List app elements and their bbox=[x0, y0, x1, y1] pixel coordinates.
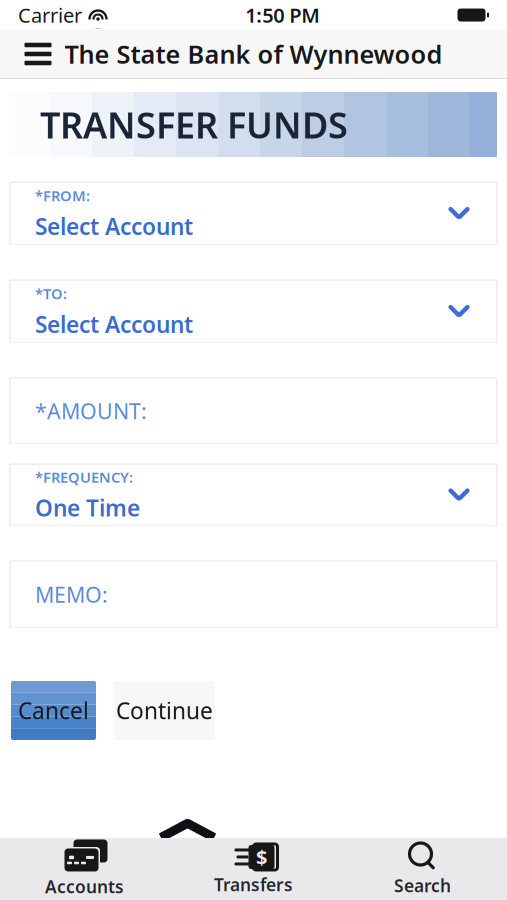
staticText: Select Account bbox=[35, 309, 193, 339]
staticText: *FROM: bbox=[35, 186, 90, 205]
staticText: 1:50 PM bbox=[245, 2, 320, 28]
staticText: Accounts bbox=[45, 875, 124, 898]
staticText: $ bbox=[256, 844, 267, 870]
button[interactable]: *FREQUENCY: bbox=[10, 464, 497, 526]
button[interactable]: Menu bbox=[12, 32, 64, 76]
staticText: Carrier bbox=[18, 2, 82, 28]
staticText: Transfers bbox=[214, 873, 293, 896]
button[interactable]: Cancel bbox=[11, 681, 96, 740]
button[interactable]: *TO: bbox=[10, 280, 497, 343]
staticText: Cancel bbox=[18, 695, 89, 725]
staticText: Continue bbox=[116, 695, 213, 725]
button[interactable]: Continue bbox=[114, 681, 215, 740]
staticText: MEMO: bbox=[35, 580, 108, 609]
button[interactable]: $ bbox=[169, 839, 338, 899]
button[interactable]: *FROM: bbox=[10, 182, 497, 245]
staticText: *TO: bbox=[35, 284, 67, 303]
staticText: One Time bbox=[35, 493, 140, 523]
staticText: Select Account bbox=[35, 211, 193, 241]
button[interactable]: Accounts bbox=[0, 839, 169, 899]
button[interactable]: MEMO: bbox=[10, 561, 497, 628]
staticText: The State Bank of Wynnewood bbox=[64, 37, 442, 71]
staticText: TRANSFER FUNDS bbox=[40, 101, 348, 148]
staticText: *FREQUENCY: bbox=[35, 467, 133, 487]
button[interactable]: Search bbox=[338, 839, 507, 899]
staticText: Search bbox=[394, 874, 451, 897]
button[interactable]: *AMOUNT: bbox=[10, 378, 497, 444]
staticText: *AMOUNT: bbox=[35, 397, 147, 425]
